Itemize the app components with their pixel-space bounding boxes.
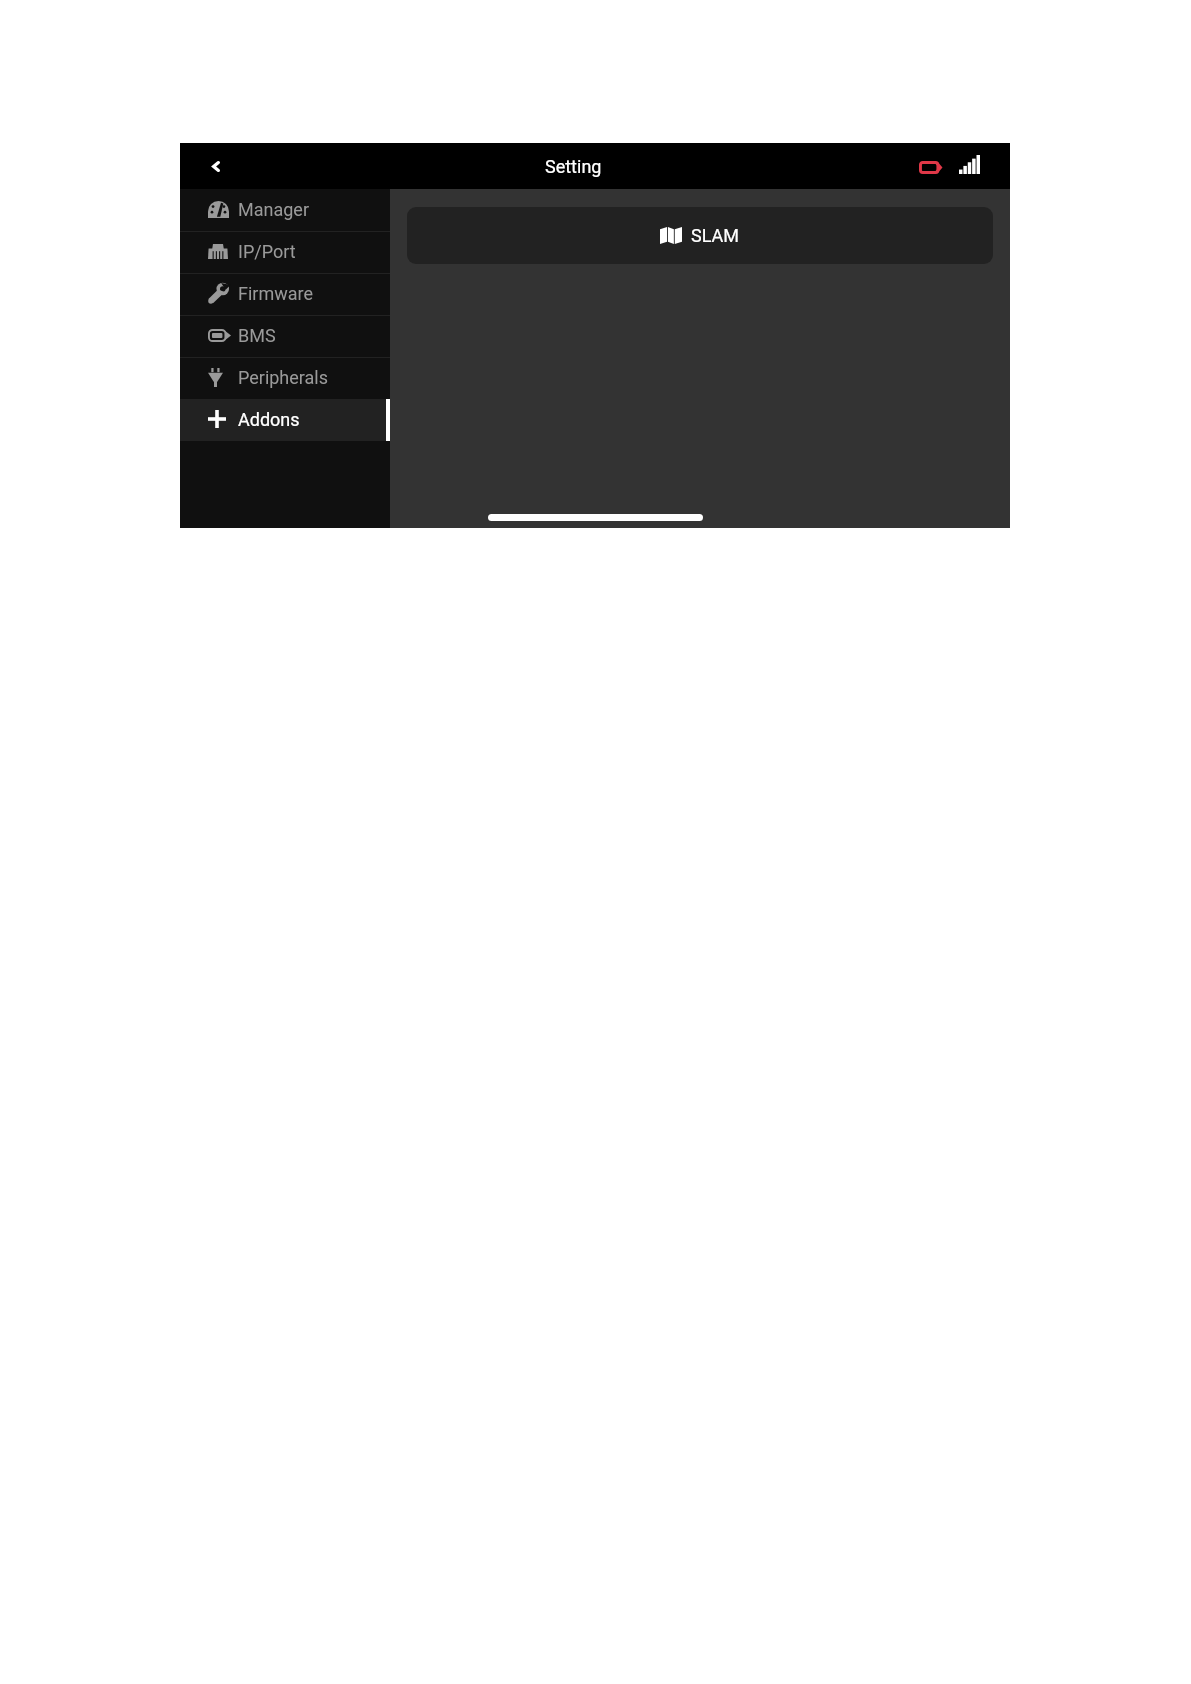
staticText: IP/Port	[238, 241, 296, 262]
staticText: Firmware	[238, 283, 314, 304]
staticText: Manager	[238, 199, 309, 220]
staticText: Setting	[545, 156, 602, 177]
staticText: Addons	[238, 409, 300, 430]
staticText: BMS	[238, 325, 276, 346]
button[interactable]: Back	[200, 150, 232, 182]
button[interactable]: Addons	[180, 399, 390, 441]
button[interactable]: SLAM	[407, 207, 993, 264]
button[interactable]: IP/Port	[180, 231, 390, 273]
staticText: SLAM	[691, 225, 740, 246]
button[interactable]: Manager	[180, 189, 390, 231]
button[interactable]: BMS	[180, 315, 390, 357]
staticText: Peripherals	[238, 367, 329, 388]
button[interactable]: Firmware	[180, 273, 390, 315]
button[interactable]: Peripherals	[180, 357, 390, 399]
